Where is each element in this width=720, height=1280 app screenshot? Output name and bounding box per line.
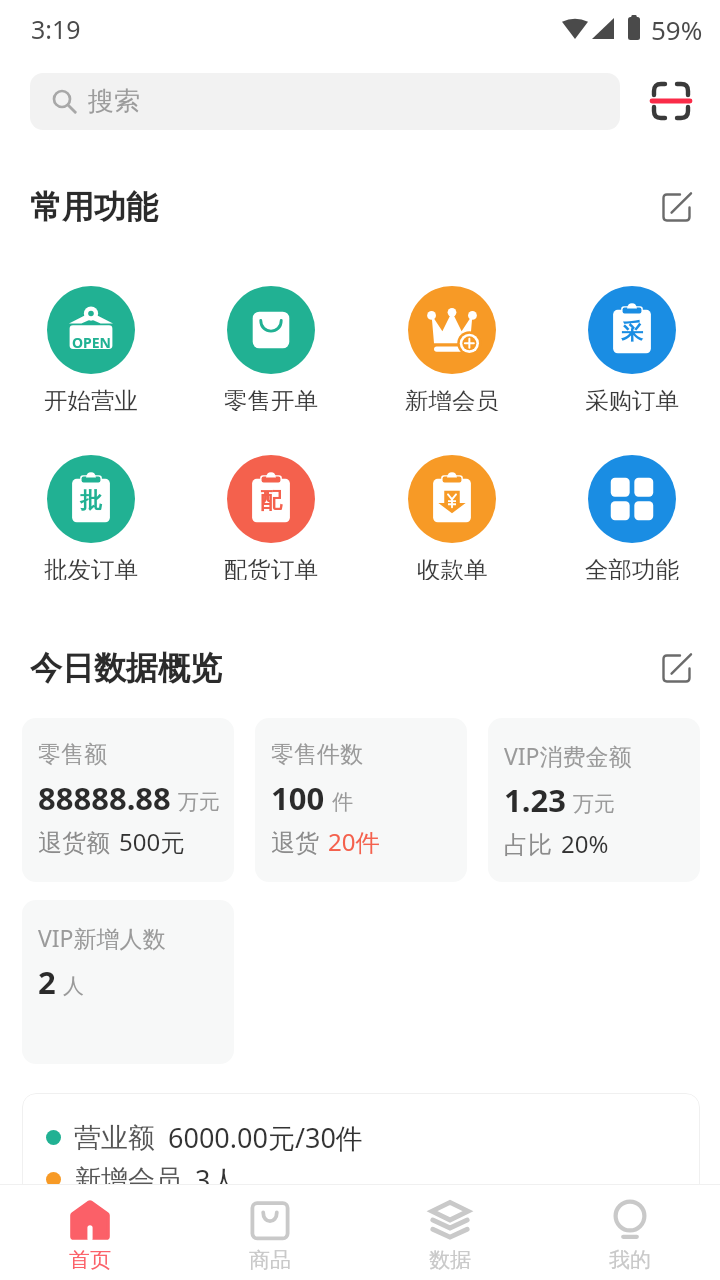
staticText: 常用功能: [30, 187, 158, 227]
staticText: 20%: [561, 827, 609, 860]
button[interactable]: 商品: [180, 1185, 360, 1280]
staticText: 批: [80, 487, 102, 515]
button[interactable]: 批: [6, 455, 176, 580]
button[interactable]: 零售额: [22, 718, 234, 882]
staticText: 采购订单: [585, 386, 679, 411]
staticText: 人: [63, 973, 84, 999]
button[interactable]: 采: [547, 286, 717, 411]
staticText: 零售开单: [224, 386, 318, 411]
staticText: 今日数据概览: [30, 648, 222, 688]
button[interactable]: 编辑数据概览: [653, 645, 699, 691]
staticText: OPEN: [72, 333, 111, 352]
staticText: 我的: [609, 1247, 651, 1273]
staticText: 2: [38, 961, 56, 1003]
staticText: 59%: [651, 12, 703, 47]
button[interactable]: 全部功能: [547, 455, 717, 580]
staticText: 全部功能: [585, 555, 679, 580]
button[interactable]: 配: [186, 455, 356, 580]
staticText: 6000.00元/30件: [168, 1119, 363, 1156]
staticText: 商品: [249, 1247, 291, 1273]
staticText: 零售件数: [271, 740, 363, 769]
staticText: 88888.88: [38, 777, 171, 819]
button[interactable]: 零售开单: [186, 286, 356, 411]
button[interactable]: 数据: [360, 1185, 540, 1280]
button[interactable]: 零售件数: [255, 718, 467, 882]
staticText: 首页: [69, 1247, 111, 1273]
staticText: 收款单: [417, 555, 488, 580]
button[interactable]: 搜索: [30, 73, 620, 130]
staticText: 零售额: [38, 740, 107, 769]
staticText: 新增会员: [74, 1163, 182, 1197]
staticText: 20件: [328, 825, 380, 858]
staticText: 采: [621, 318, 643, 346]
button[interactable]: VIP新增人数: [22, 900, 234, 1064]
staticText: 新增会员: [405, 386, 499, 411]
staticText: VIP消费金额: [504, 740, 632, 771]
staticText: 3:19: [31, 12, 81, 46]
staticText: 退货额: [38, 828, 110, 858]
staticText: 退货: [271, 828, 319, 858]
staticText: 数据: [429, 1247, 471, 1273]
staticText: VIP新增人数: [38, 922, 166, 953]
staticText: 100: [271, 777, 325, 819]
button[interactable]: 扫一扫: [645, 75, 697, 127]
staticText: 件: [332, 789, 353, 815]
button[interactable]: 首页: [0, 1185, 180, 1280]
button[interactable]: 我的: [540, 1185, 720, 1280]
staticText: 配: [260, 487, 282, 515]
button[interactable]: 营业额: [22, 1093, 700, 1253]
staticText: 占比: [504, 830, 552, 860]
button[interactable]: 编辑常用功能: [653, 184, 699, 230]
staticText: 营业额: [74, 1121, 155, 1155]
staticText: 3人: [195, 1161, 238, 1198]
staticText: 500元: [119, 825, 185, 858]
staticText: 搜索: [88, 85, 140, 118]
staticText: 万元: [178, 789, 220, 815]
staticText: 配货订单: [224, 555, 318, 580]
button[interactable]: 收款单: [367, 455, 537, 580]
staticText: 批发订单: [44, 555, 138, 580]
staticText: 开始营业: [44, 386, 138, 411]
staticText: 1.23: [504, 779, 566, 821]
button[interactable]: VIP消费金额: [488, 718, 700, 882]
button[interactable]: 新增会员: [367, 286, 537, 411]
button[interactable]: OPEN: [6, 286, 176, 411]
staticText: 万元: [573, 791, 615, 817]
